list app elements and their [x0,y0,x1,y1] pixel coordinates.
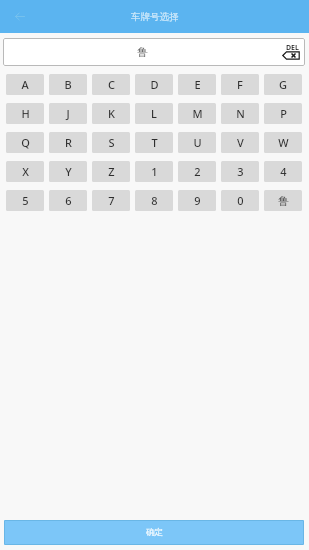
staticText: Q [21,135,30,150]
button[interactable]: 3 [221,161,259,182]
button[interactable]: A [6,74,44,95]
button[interactable]: 1 [135,161,173,182]
staticText: F [237,77,243,92]
button[interactable]: 确定 [4,520,304,545]
button[interactable]: Delete [281,41,301,63]
staticText: W [278,135,289,150]
button[interactable]: R [49,132,87,153]
staticText: 鲁 [278,194,289,208]
staticText: N [236,106,245,121]
button[interactable]: J [49,103,87,124]
button[interactable]: K [92,103,130,124]
button[interactable]: T [135,132,173,153]
button[interactable]: U [178,132,216,153]
staticText: M [192,106,203,121]
staticText: 鲁 [137,45,148,59]
staticText: S [108,135,115,150]
button[interactable]: M [178,103,216,124]
staticText: 4 [280,164,287,179]
staticText: A [21,77,29,92]
staticText: C [108,77,115,92]
staticText: T [151,135,158,150]
button[interactable]: S [92,132,130,153]
button[interactable]: 2 [178,161,216,182]
button[interactable]: 4 [264,161,302,182]
staticText: B [64,77,72,92]
staticText: 车牌号选择 [131,11,179,23]
staticText: H [21,106,30,121]
staticText: R [65,135,72,150]
staticText: J [66,106,70,121]
staticText: P [280,106,287,121]
button[interactable]: 5 [6,190,44,211]
staticText: Y [65,164,72,179]
button[interactable]: 8 [135,190,173,211]
button[interactable]: D [135,74,173,95]
button[interactable]: G [264,74,302,95]
staticText: 8 [151,193,158,208]
button[interactable]: E [178,74,216,95]
button[interactable]: Back [9,6,31,28]
staticText: L [151,106,157,121]
staticText: G [279,77,287,92]
staticText: 7 [108,193,115,208]
button[interactable]: X [6,161,44,182]
staticText: 2 [194,164,201,179]
button[interactable]: V [221,132,259,153]
button[interactable]: H [6,103,44,124]
staticText: 0 [237,193,244,208]
staticText: 6 [65,193,72,208]
button[interactable]: C [92,74,130,95]
staticText: K [108,106,115,121]
button[interactable]: 鲁 [264,190,302,211]
button[interactable]: P [264,103,302,124]
button[interactable]: 7 [92,190,130,211]
staticText: X [22,164,29,179]
staticText: V [237,135,244,150]
button[interactable]: 9 [178,190,216,211]
button[interactable]: B [49,74,87,95]
button[interactable]: 0 [221,190,259,211]
staticText: 5 [22,193,29,208]
staticText: D [150,77,159,92]
button[interactable]: F [221,74,259,95]
staticText: 9 [194,193,201,208]
button[interactable]: L [135,103,173,124]
staticText: Z [108,164,115,179]
button[interactable]: Y [49,161,87,182]
staticText: 3 [237,164,244,179]
staticText: E [194,77,201,92]
staticText: 1 [151,164,158,179]
button[interactable]: W [264,132,302,153]
button[interactable]: N [221,103,259,124]
button[interactable]: Q [6,132,44,153]
staticText: DEL [286,43,299,53]
button[interactable]: Z [92,161,130,182]
staticText: 确定 [146,527,163,538]
button[interactable]: 6 [49,190,87,211]
staticText: U [193,135,202,150]
